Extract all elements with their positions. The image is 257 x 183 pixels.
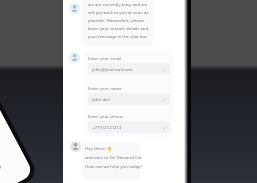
staticText: Enter your name — [88, 85, 122, 91]
staticText: +77312121213 — [92, 124, 122, 130]
staticText: we are currently busy and we will get ba… — [88, 1, 154, 39]
staticText: Hey there! 👋 welcome to On Demand Car. H… — [85, 145, 143, 169]
button[interactable]: +77312121213 — [88, 121, 170, 133]
staticText: john@yourmail.com — [92, 66, 133, 72]
staticText: Enter your email — [88, 55, 122, 61]
staticText: Enter your phone — [88, 113, 124, 119]
button[interactable]: John doe — [88, 93, 170, 105]
staticText: John doe — [92, 96, 110, 102]
button[interactable]: john@yourmail.com — [88, 63, 170, 75]
